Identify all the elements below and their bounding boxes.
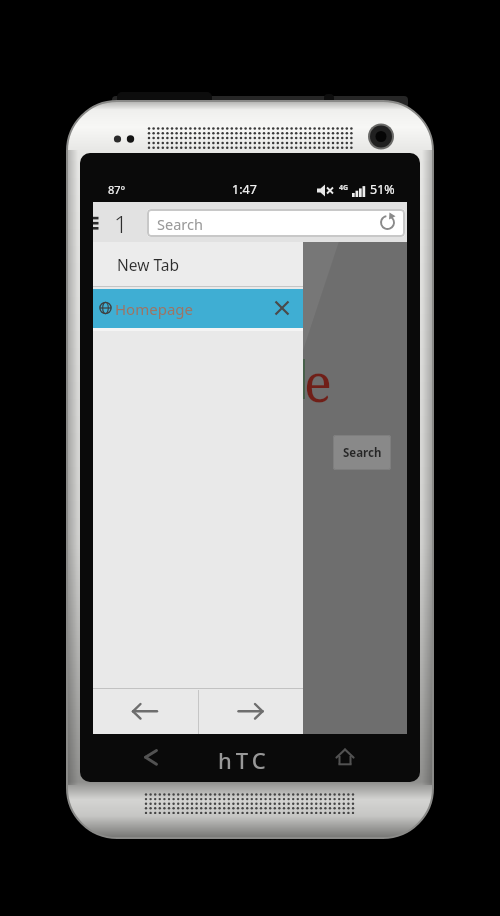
button[interactable] [138,744,166,772]
button[interactable]: Homepage [93,289,303,328]
staticText: 51% [370,181,395,198]
button[interactable] [147,209,405,237]
staticText: Search [157,214,203,234]
staticText: Search [343,445,382,461]
button[interactable]: Search [333,435,391,470]
button[interactable] [331,744,359,772]
staticText: hTC [218,745,270,775]
button[interactable]: New Tab [93,242,303,286]
staticText: 1 [114,207,128,240]
button[interactable] [271,297,293,319]
staticText: e [304,346,332,417]
button[interactable] [93,690,198,734]
staticText: Homepage [115,299,194,319]
staticText: 4G [339,183,349,193]
staticText: 1:47 [232,181,257,198]
button[interactable] [199,690,303,734]
staticText: New Tab [117,254,180,275]
staticText: 87° [108,182,126,197]
